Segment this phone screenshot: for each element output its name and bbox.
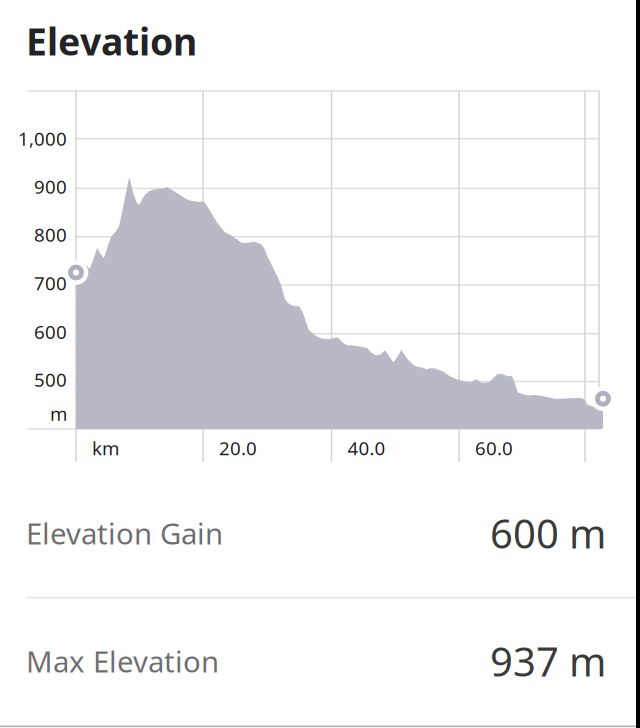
staticText: 700	[34, 271, 67, 295]
staticText: 800	[34, 222, 67, 247]
staticText: 600	[34, 319, 67, 344]
staticText: Elevation Gain	[26, 513, 223, 552]
staticText: m	[50, 401, 67, 426]
staticText: 60.0	[475, 436, 513, 460]
button[interactable]: Max Elevation	[0, 597, 636, 725]
staticText: 40.0	[347, 436, 385, 460]
staticText: 1,000	[18, 126, 67, 151]
staticText: Elevation	[26, 16, 197, 66]
staticText: Max Elevation	[26, 641, 219, 680]
staticText: km	[92, 436, 119, 460]
staticText: 600 m	[490, 506, 606, 559]
staticText: 20.0	[219, 436, 257, 460]
button[interactable]: Elevation Gain	[0, 469, 636, 597]
staticText: 500	[34, 367, 67, 392]
staticText: 937 m	[490, 634, 606, 687]
staticText: 900	[34, 174, 67, 199]
